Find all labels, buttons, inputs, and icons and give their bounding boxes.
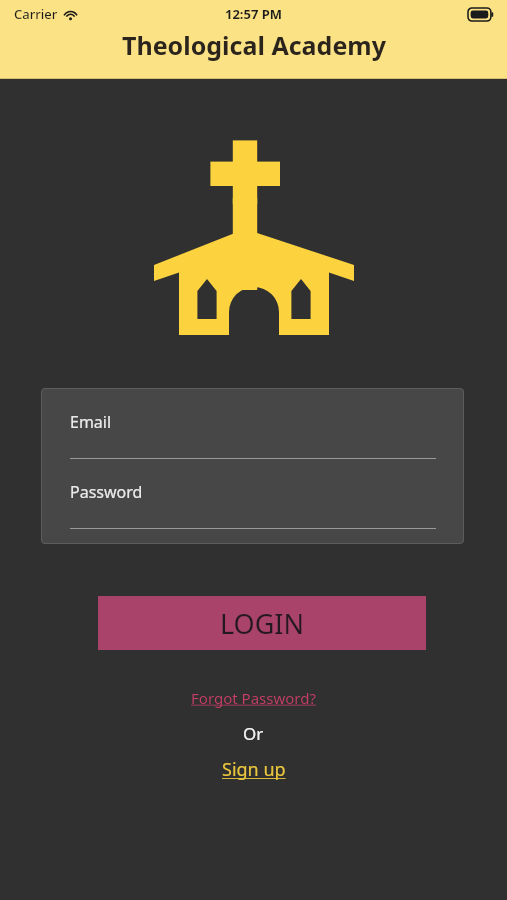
button[interactable]: LOGIN [98, 596, 426, 650]
staticText: Theological Academy [122, 28, 386, 62]
button[interactable]: Forgot Password? [185, 686, 322, 710]
button[interactable]: Email [70, 404, 436, 459]
staticText: Forgot Password? [191, 688, 316, 708]
staticText: 12:57 PM [225, 5, 283, 23]
staticText: Or [243, 722, 264, 745]
other: Church logo [154, 138, 354, 338]
button[interactable]: Sign up [216, 755, 292, 784]
staticText: Password [70, 481, 143, 503]
staticText: Carrier [14, 5, 58, 23]
staticText: LOGIN [220, 605, 305, 642]
staticText: Email [70, 411, 112, 433]
staticText: Sign up [222, 757, 286, 782]
button[interactable]: Password [70, 474, 436, 529]
